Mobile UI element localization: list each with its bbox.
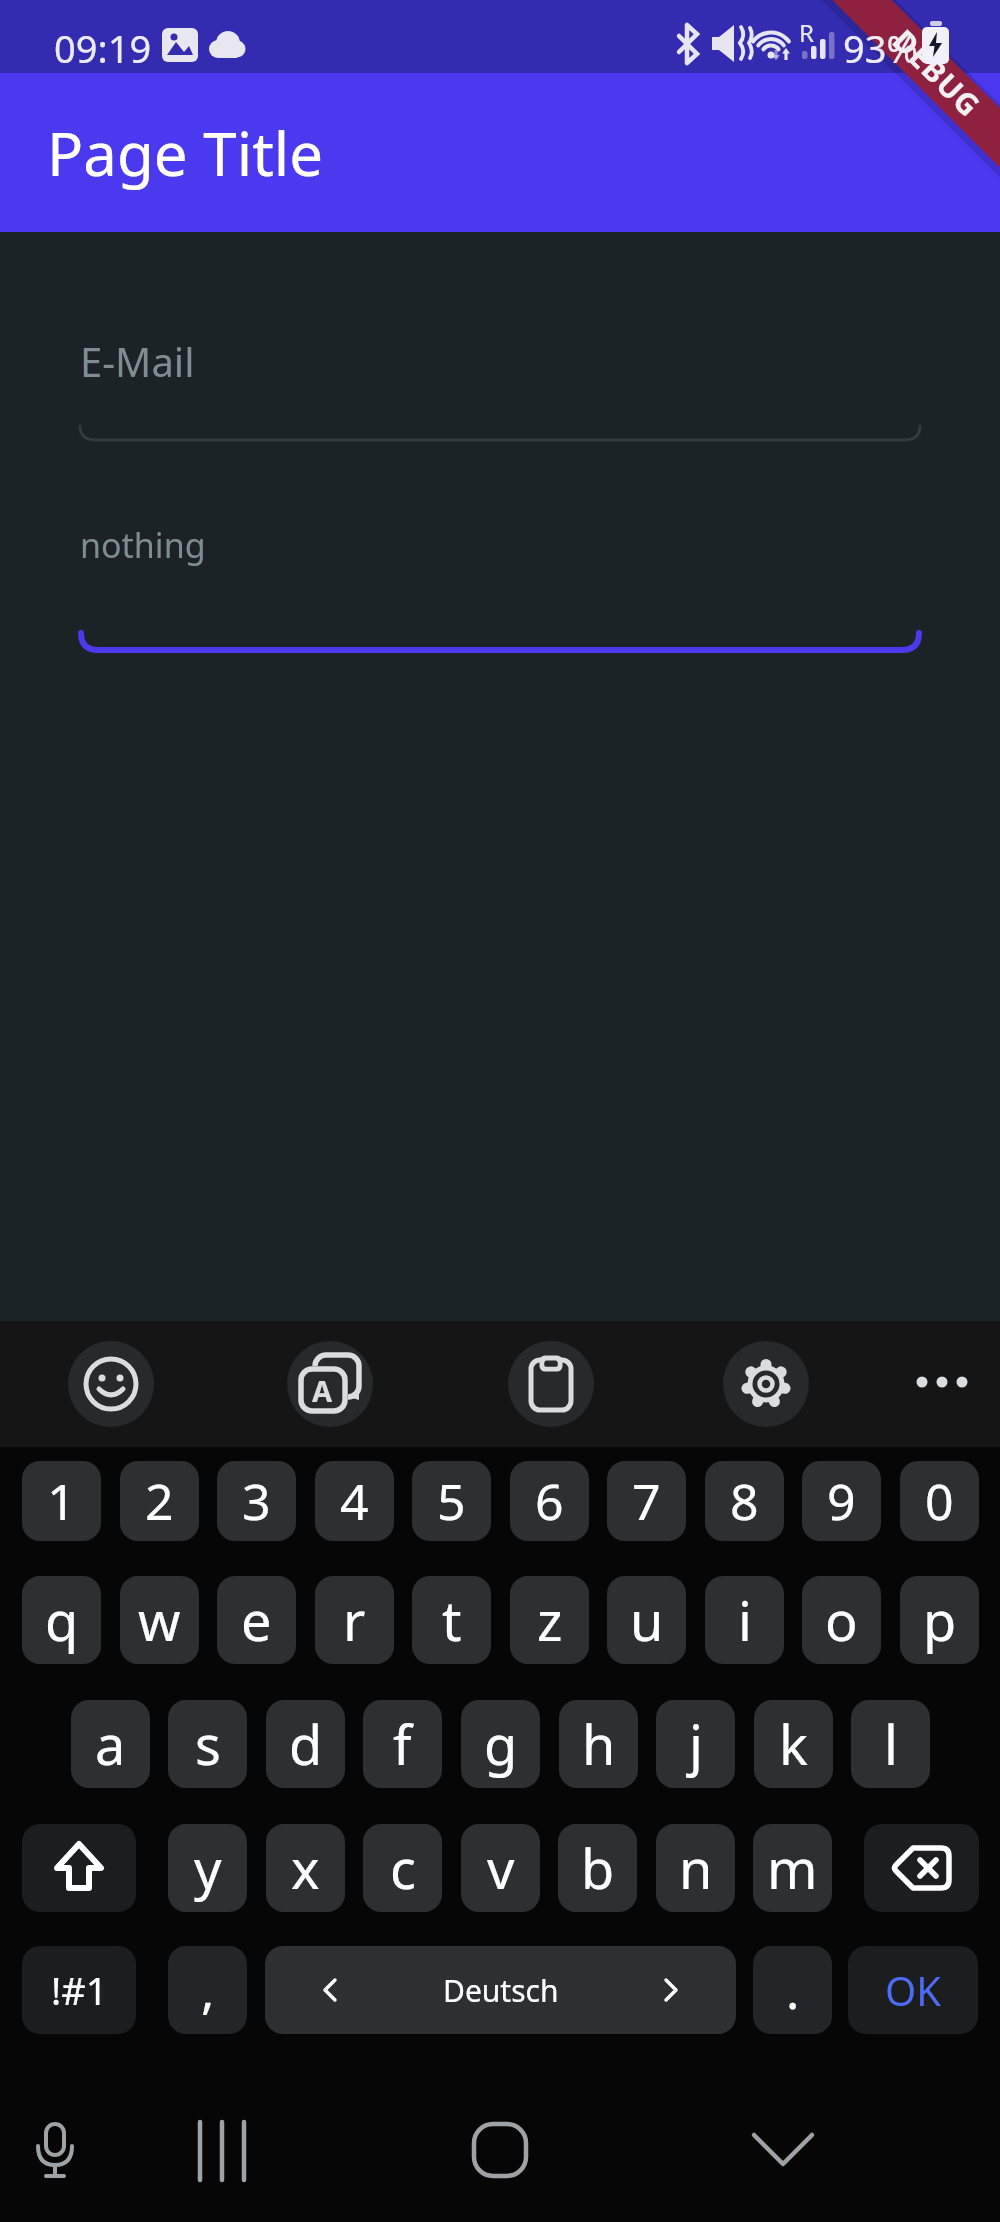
button[interactable]: j: [656, 1700, 735, 1788]
button[interactable]: [22, 1824, 136, 1912]
button[interactable]: ,: [168, 1946, 247, 2034]
staticText: e: [241, 1583, 272, 1657]
button[interactable]: u: [607, 1576, 686, 1664]
staticText: !#1: [51, 1964, 108, 2016]
button[interactable]: [723, 1341, 809, 1427]
button[interactable]: m: [753, 1824, 832, 1912]
staticText: t: [442, 1583, 462, 1657]
button[interactable]: OK: [848, 1946, 978, 2034]
button[interactable]: b: [558, 1824, 637, 1912]
button[interactable]: k: [754, 1700, 833, 1788]
staticText: m: [767, 1831, 818, 1905]
button[interactable]: z: [510, 1576, 589, 1664]
button[interactable]: 6: [510, 1461, 589, 1541]
button[interactable]: [468, 2118, 532, 2182]
button[interactable]: h: [559, 1700, 638, 1788]
button[interactable]: 1: [22, 1461, 101, 1541]
button[interactable]: f: [363, 1700, 442, 1788]
staticText: v: [487, 1831, 515, 1905]
staticText: 1: [47, 1467, 76, 1535]
staticText: d: [289, 1707, 323, 1781]
button[interactable]: Deutsch: [265, 1946, 736, 2034]
staticText: 4: [340, 1467, 369, 1535]
staticText: 6: [535, 1467, 564, 1535]
staticText: u: [630, 1583, 664, 1657]
staticText: ,: [201, 1956, 215, 2024]
button[interactable]: o: [802, 1576, 881, 1664]
button[interactable]: nothing: [78, 490, 922, 654]
staticText: nothing: [80, 522, 206, 568]
staticText: c: [390, 1831, 416, 1905]
button[interactable]: l: [851, 1700, 930, 1788]
staticText: x: [291, 1831, 320, 1905]
button[interactable]: [916, 1376, 968, 1388]
button[interactable]: 2: [120, 1461, 199, 1541]
staticText: E-Mail: [80, 334, 195, 388]
staticText: 5: [437, 1467, 466, 1535]
staticText: 9: [827, 1467, 856, 1535]
button[interactable]: d: [266, 1700, 345, 1788]
staticText: OK: [885, 1963, 941, 2017]
button[interactable]: A: [287, 1341, 373, 1427]
staticText: 93%: [843, 22, 919, 74]
button[interactable]: E-Mail: [78, 280, 922, 450]
staticText: .: [786, 1956, 800, 2024]
button[interactable]: s: [168, 1700, 247, 1788]
button[interactable]: e: [217, 1576, 296, 1664]
staticText: h: [582, 1707, 616, 1781]
staticText: A: [312, 1371, 333, 1410]
staticText: w: [138, 1583, 181, 1657]
staticText: 0: [925, 1467, 954, 1535]
button[interactable]: [68, 1341, 154, 1427]
staticText: y: [194, 1831, 222, 1905]
staticText: R: [799, 16, 814, 49]
button[interactable]: [190, 2118, 254, 2184]
staticText: i: [738, 1583, 752, 1657]
staticText: o: [825, 1583, 858, 1657]
button[interactable]: v: [461, 1824, 540, 1912]
button[interactable]: a: [71, 1700, 150, 1788]
staticText: b: [581, 1831, 615, 1905]
button[interactable]: 0: [900, 1461, 979, 1541]
button[interactable]: q: [22, 1576, 101, 1664]
staticText: Page Title: [47, 112, 324, 194]
staticText: 7: [632, 1467, 661, 1535]
staticText: 3: [242, 1467, 271, 1535]
staticText: q: [45, 1583, 79, 1657]
button[interactable]: i: [705, 1576, 784, 1664]
button[interactable]: r: [315, 1576, 394, 1664]
button[interactable]: g: [461, 1700, 540, 1788]
staticText: g: [484, 1707, 518, 1781]
button[interactable]: c: [363, 1824, 442, 1912]
button[interactable]: 8: [705, 1461, 784, 1541]
staticText: p: [923, 1583, 957, 1657]
staticText: l: [884, 1707, 898, 1781]
staticText: s: [195, 1707, 221, 1781]
button[interactable]: [750, 2124, 816, 2174]
staticText: n: [679, 1831, 713, 1905]
button[interactable]: 4: [315, 1461, 394, 1541]
staticText: z: [537, 1583, 563, 1657]
staticText: DEBUG: [884, 20, 990, 126]
button[interactable]: [864, 1824, 979, 1912]
button[interactable]: [508, 1341, 594, 1427]
button[interactable]: t: [412, 1576, 491, 1664]
button[interactable]: x: [266, 1824, 345, 1912]
button[interactable]: !#1: [22, 1946, 136, 2034]
button[interactable]: y: [168, 1824, 247, 1912]
staticText: Deutsch: [443, 1970, 559, 2011]
staticText: k: [779, 1707, 808, 1781]
staticText: 8: [730, 1467, 759, 1535]
staticText: j: [689, 1707, 703, 1781]
staticText: f: [393, 1707, 412, 1781]
button[interactable]: 9: [802, 1461, 881, 1541]
button[interactable]: [25, 2120, 85, 2184]
button[interactable]: 5: [412, 1461, 491, 1541]
button[interactable]: 3: [217, 1461, 296, 1541]
button[interactable]: p: [900, 1576, 979, 1664]
button[interactable]: .: [753, 1946, 832, 2034]
button[interactable]: n: [656, 1824, 735, 1912]
button[interactable]: 7: [607, 1461, 686, 1541]
staticText: 09:19: [54, 22, 152, 74]
button[interactable]: w: [120, 1576, 199, 1664]
